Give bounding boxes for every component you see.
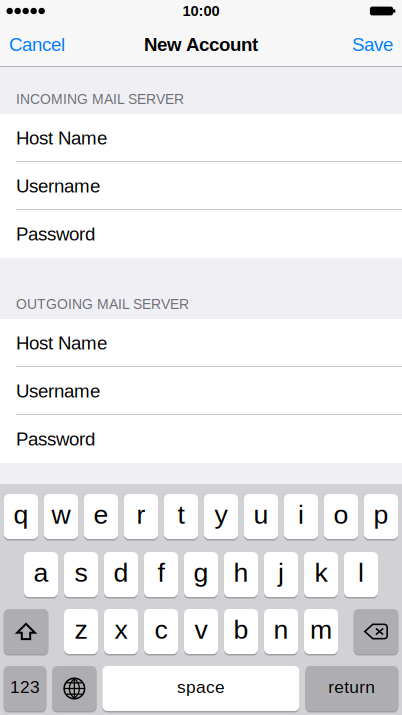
- staticText: Cancel: [9, 34, 65, 55]
- button[interactable]: k: [304, 552, 338, 597]
- button[interactable]: j: [264, 552, 298, 597]
- button[interactable]: p: [364, 494, 398, 539]
- staticText: h: [233, 558, 248, 587]
- button[interactable]: Delete: [354, 609, 398, 654]
- staticText: n: [273, 615, 288, 644]
- staticText: d: [113, 558, 128, 587]
- button[interactable]: h: [224, 552, 258, 597]
- staticText: s: [74, 558, 87, 587]
- button[interactable]: Host Name: [0, 319, 402, 367]
- staticText: o: [333, 500, 348, 529]
- button[interactable]: g: [184, 552, 218, 597]
- button[interactable]: f: [144, 552, 178, 597]
- button[interactable]: Username: [0, 367, 402, 415]
- button[interactable]: return: [305, 666, 398, 711]
- staticText: OUTGOING MAIL SERVER: [16, 296, 189, 312]
- button[interactable]: 123: [4, 666, 46, 711]
- button[interactable]: w: [44, 494, 78, 539]
- button[interactable]: s: [64, 552, 98, 597]
- button[interactable]: x: [104, 609, 138, 654]
- staticText: t: [177, 500, 184, 529]
- staticText: z: [74, 615, 87, 644]
- button[interactable]: a: [24, 552, 58, 597]
- staticText: return: [328, 677, 375, 697]
- button[interactable]: Host Name: [0, 114, 402, 162]
- staticText: 10:00: [182, 3, 219, 19]
- staticText: u: [253, 500, 268, 529]
- staticText: r: [136, 500, 145, 529]
- button[interactable]: e: [84, 494, 118, 539]
- staticText: c: [154, 615, 167, 644]
- staticText: x: [114, 615, 127, 644]
- staticText: y: [214, 500, 227, 529]
- button[interactable]: q: [4, 494, 38, 539]
- button[interactable]: y: [204, 494, 238, 539]
- staticText: b: [233, 615, 248, 644]
- button[interactable]: Username: [0, 162, 402, 210]
- button[interactable]: d: [104, 552, 138, 597]
- staticText: Username: [16, 381, 100, 401]
- button[interactable]: t: [164, 494, 198, 539]
- staticText: i: [298, 500, 304, 529]
- staticText: v: [194, 615, 207, 644]
- staticText: New Account: [144, 34, 258, 55]
- staticText: q: [13, 500, 28, 529]
- staticText: Password: [16, 224, 95, 244]
- staticText: space: [177, 677, 225, 697]
- staticText: p: [373, 500, 388, 529]
- button[interactable]: b: [224, 609, 258, 654]
- staticText: Username: [16, 176, 100, 196]
- button[interactable]: Save: [343, 22, 402, 67]
- staticText: Password: [16, 429, 95, 449]
- staticText: 123: [10, 677, 40, 697]
- staticText: g: [193, 558, 208, 587]
- button[interactable]: Cancel: [0, 22, 74, 67]
- button[interactable]: i: [284, 494, 318, 539]
- button[interactable]: n: [264, 609, 298, 654]
- staticText: INCOMING MAIL SERVER: [16, 91, 184, 107]
- staticText: k: [314, 558, 327, 587]
- button[interactable]: u: [244, 494, 278, 539]
- staticText: Save: [352, 34, 393, 55]
- staticText: w: [51, 500, 70, 529]
- staticText: Host Name: [16, 128, 107, 148]
- button[interactable]: space: [102, 666, 299, 711]
- staticText: a: [33, 558, 48, 587]
- staticText: f: [157, 558, 164, 587]
- button[interactable]: v: [184, 609, 218, 654]
- staticText: m: [310, 615, 332, 644]
- staticText: j: [278, 558, 284, 587]
- button[interactable]: Shift: [4, 609, 48, 654]
- staticText: e: [93, 500, 108, 529]
- button[interactable]: m: [304, 609, 338, 654]
- button[interactable]: Next keyboard: [52, 666, 96, 711]
- button[interactable]: l: [344, 552, 378, 597]
- button[interactable]: o: [324, 494, 358, 539]
- button[interactable]: z: [64, 609, 98, 654]
- button[interactable]: r: [124, 494, 158, 539]
- staticText: l: [358, 558, 364, 587]
- button[interactable]: c: [144, 609, 178, 654]
- button[interactable]: Password: [0, 210, 402, 258]
- staticText: Host Name: [16, 333, 107, 353]
- button[interactable]: Password: [0, 415, 402, 463]
